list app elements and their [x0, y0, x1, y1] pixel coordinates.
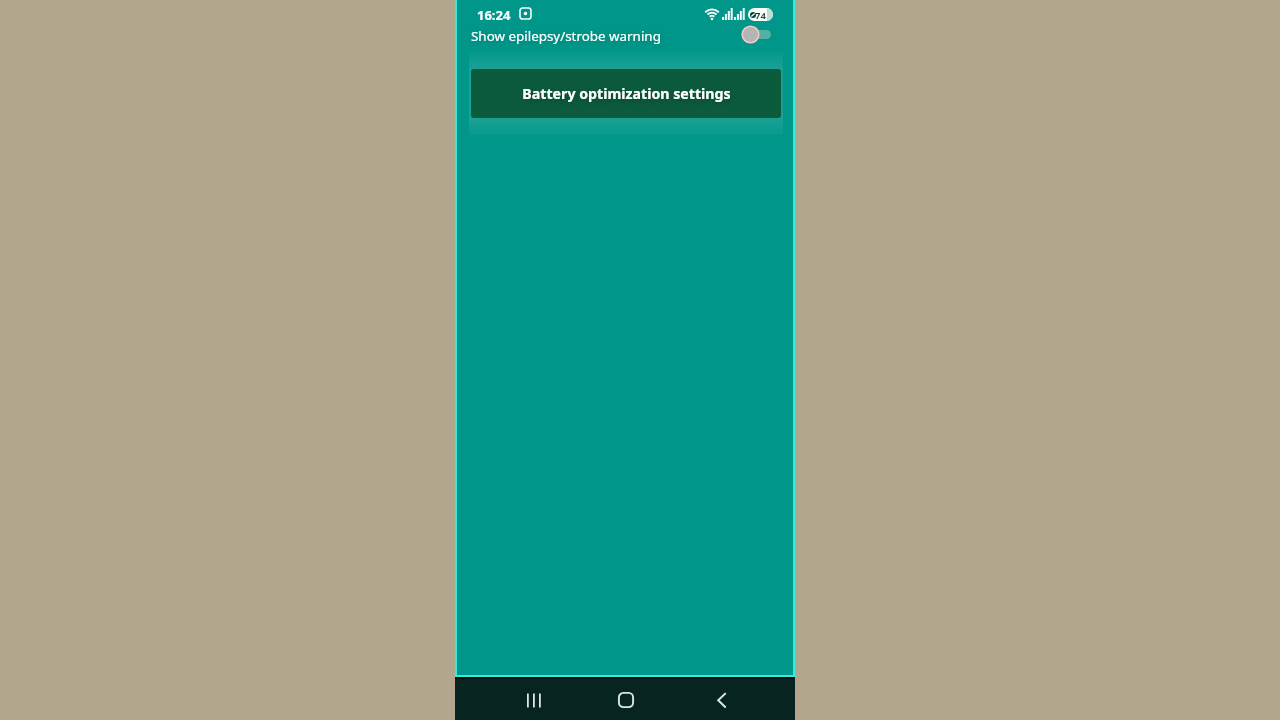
button[interactable] [514, 680, 554, 720]
staticText: 16:24 [477, 6, 511, 24]
button[interactable]: Show epilepsy/strobe warning [455, 24, 795, 48]
button[interactable] [606, 680, 646, 720]
staticText: Show epilepsy/strobe warning [471, 27, 661, 45]
button[interactable]: Battery optimization settings [471, 69, 781, 118]
button[interactable] [702, 680, 742, 720]
staticText: 74 [755, 9, 766, 21]
staticText: Battery optimization settings [522, 84, 731, 103]
